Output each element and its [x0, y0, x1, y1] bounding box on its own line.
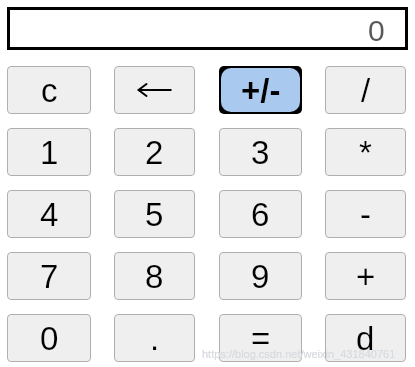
staticText: 3	[251, 134, 270, 171]
staticText: *	[359, 134, 372, 171]
staticText: 5	[145, 196, 164, 233]
staticText: 7	[40, 258, 59, 295]
staticText: 9	[251, 258, 270, 295]
button[interactable]: +/-	[221, 68, 300, 112]
button[interactable]: c	[7, 66, 91, 114]
staticText: 6	[251, 196, 270, 233]
button[interactable]: *	[325, 128, 406, 176]
staticText: c	[41, 72, 58, 109]
button[interactable]: 0	[7, 7, 408, 50]
staticText: -	[360, 196, 371, 233]
button[interactable]: 7	[7, 252, 91, 300]
staticText: 0	[40, 320, 59, 357]
button[interactable]: -	[325, 190, 406, 238]
staticText: +/-	[241, 72, 281, 109]
button[interactable]: 2	[114, 128, 195, 176]
button[interactable]: d	[325, 314, 406, 362]
button[interactable]: 4	[7, 190, 91, 238]
button[interactable]: 9	[219, 252, 302, 300]
staticText: .	[150, 320, 160, 357]
button[interactable]: =	[219, 314, 302, 362]
staticText: 4	[40, 196, 59, 233]
staticText: /	[361, 72, 371, 109]
staticText: 1	[40, 134, 59, 171]
staticText: d	[356, 320, 375, 357]
button[interactable]: .	[114, 314, 195, 362]
staticText: =	[251, 320, 271, 357]
staticText: +	[356, 258, 376, 295]
staticText: https://blog.csdn.net/weixin_431840761	[202, 348, 396, 360]
button[interactable]: 3	[219, 128, 302, 176]
button[interactable]: /	[325, 66, 406, 114]
button[interactable]: 1	[7, 128, 91, 176]
staticText: 2	[145, 134, 164, 171]
button[interactable]: 5	[114, 190, 195, 238]
button[interactable]: +	[325, 252, 406, 300]
button[interactable]: 6	[219, 190, 302, 238]
staticText: 8	[145, 258, 164, 295]
button[interactable]: 8	[114, 252, 195, 300]
staticText: 0	[368, 14, 385, 48]
button[interactable]	[114, 66, 195, 114]
button[interactable]: 0	[7, 314, 91, 362]
